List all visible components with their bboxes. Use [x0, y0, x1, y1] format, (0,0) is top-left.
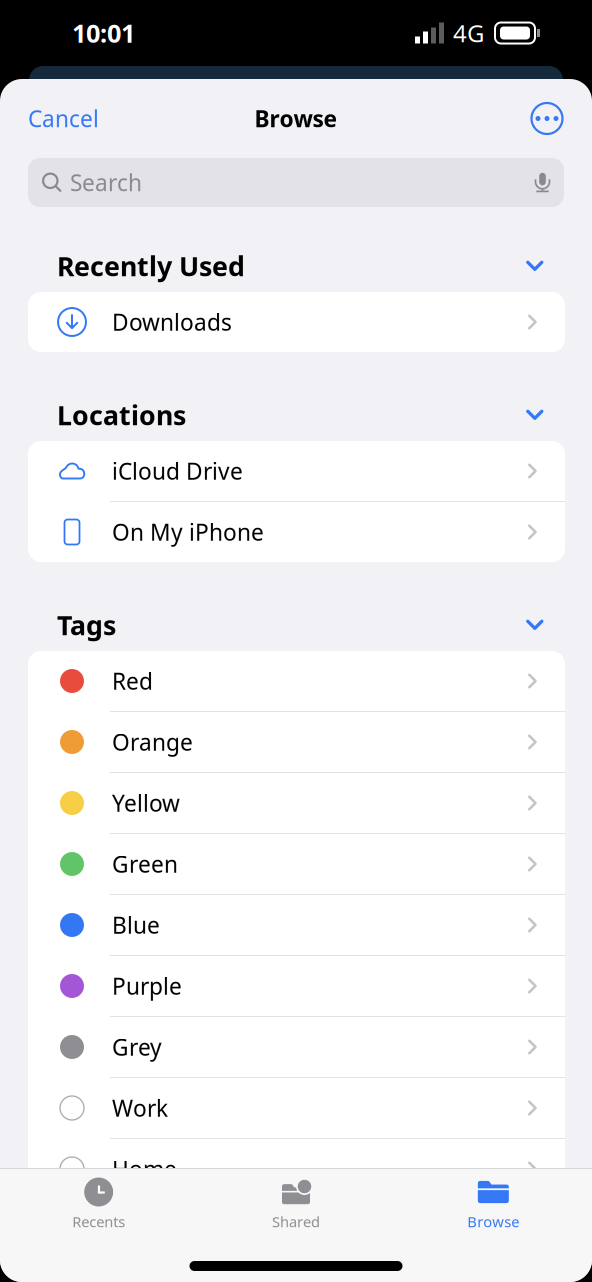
- button[interactable]: Home: [28, 1139, 565, 1200]
- button[interactable]: Cancel: [28, 91, 117, 146]
- button[interactable]: Important: [28, 1200, 565, 1260]
- button[interactable]: Blue: [28, 895, 565, 956]
- staticText: Yellow: [112, 788, 180, 818]
- button[interactable]: More: [529, 100, 565, 136]
- staticText: Recently Used: [57, 248, 245, 284]
- staticText: iCloud Drive: [112, 456, 243, 486]
- staticText: Home: [112, 1154, 177, 1184]
- button[interactable]: On My iPhone: [28, 502, 565, 562]
- staticText: Blue: [112, 910, 160, 940]
- button[interactable]: Downloads: [28, 292, 565, 352]
- staticText: Browse: [467, 1211, 519, 1231]
- staticText: Cancel: [28, 103, 99, 134]
- staticText: Red: [112, 666, 153, 696]
- button[interactable]: Shared: [197, 1169, 395, 1239]
- button[interactable]: Work: [28, 1078, 565, 1139]
- button[interactable]: Purple: [28, 956, 565, 1017]
- staticText: Locations: [57, 397, 186, 433]
- staticText: 10:01: [72, 16, 135, 50]
- button[interactable]: Green: [28, 834, 565, 895]
- staticText: Tags: [57, 607, 116, 643]
- staticText: 4G: [453, 17, 484, 49]
- staticText: Shared: [272, 1211, 320, 1231]
- staticText: On My iPhone: [112, 517, 264, 547]
- staticText: Purple: [112, 971, 182, 1001]
- staticText: Work: [112, 1093, 168, 1123]
- button[interactable]: Yellow: [28, 773, 565, 834]
- staticText: Orange: [112, 727, 193, 757]
- staticText: Downloads: [112, 307, 232, 337]
- staticText: Green: [112, 849, 178, 879]
- staticText: Recents: [72, 1211, 125, 1231]
- button[interactable]: Browse: [395, 1169, 592, 1239]
- button[interactable]: Grey: [28, 1017, 565, 1078]
- button[interactable]: Recents: [0, 1169, 197, 1239]
- staticText: Browse: [254, 103, 337, 134]
- button[interactable]: Red: [28, 651, 565, 712]
- button[interactable]: Collapse Recently Used: [515, 249, 555, 283]
- button[interactable]: Collapse Tags: [515, 608, 555, 642]
- staticText: Important: [112, 1215, 221, 1245]
- button[interactable]: Collapse Locations: [515, 398, 555, 432]
- button[interactable]: iCloud Drive: [28, 441, 565, 502]
- button[interactable]: Orange: [28, 712, 565, 773]
- staticText: Search: [70, 167, 142, 198]
- staticText: Grey: [112, 1032, 162, 1062]
